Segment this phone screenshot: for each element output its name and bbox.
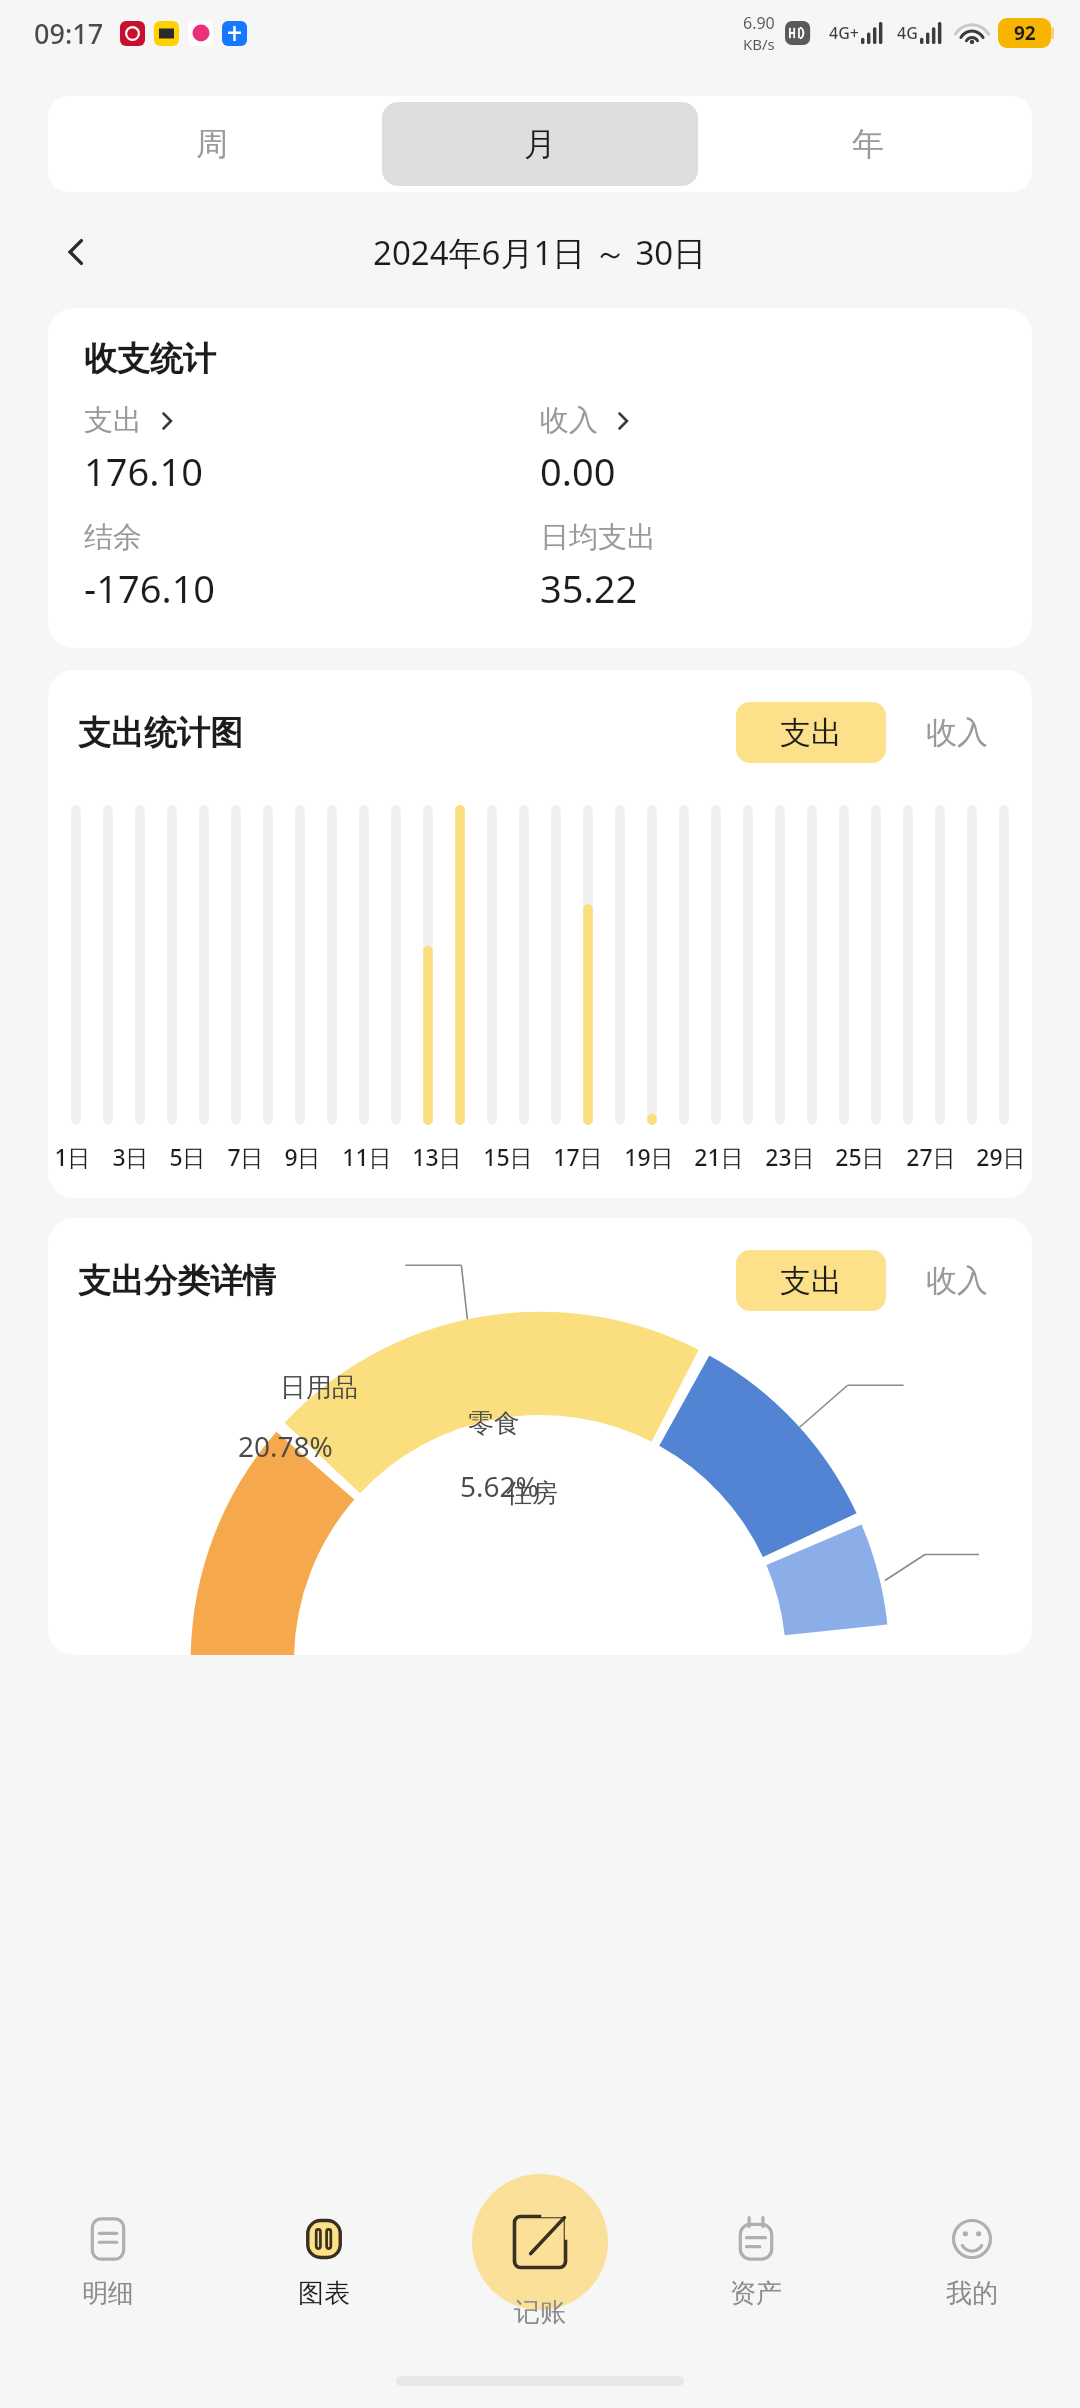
staticText: 收入 — [540, 402, 598, 439]
button[interactable]: 支出 — [84, 402, 178, 439]
staticText: 13日 — [412, 1141, 462, 1172]
staticText: 35.22 — [540, 562, 638, 614]
staticText: 我的 — [946, 2277, 998, 2310]
staticText: 92 — [1014, 20, 1036, 46]
staticText: 1日 — [54, 1141, 91, 1172]
staticText: 年 — [852, 124, 884, 164]
staticText: 支出 — [780, 713, 842, 752]
button[interactable]: 收支统计 — [48, 308, 1032, 648]
staticText: 09:17 — [34, 15, 104, 52]
staticText: 资产 — [730, 2277, 782, 2310]
button[interactable]: 收入 — [922, 1250, 992, 1311]
staticText: 29日 — [976, 1141, 1026, 1172]
staticText: 5日 — [169, 1141, 206, 1172]
button[interactable]: 收入 — [922, 702, 992, 763]
staticText: 5.62% — [460, 1467, 539, 1505]
button[interactable]: 收入 — [540, 402, 634, 439]
staticText: 9日 — [284, 1141, 321, 1172]
staticText: 19日 — [624, 1141, 674, 1172]
staticText: 2024年6月1日 ～ 30日 — [373, 230, 707, 275]
button[interactable]: 支出 — [736, 702, 886, 763]
staticText: 收入 — [926, 713, 988, 752]
button[interactable]: 图表 — [216, 2180, 432, 2340]
staticText: 7日 — [227, 1141, 264, 1172]
staticText: 支出 — [780, 1261, 842, 1300]
staticText: 日用品 — [280, 1371, 358, 1404]
staticText: 0.00 — [540, 445, 616, 497]
staticText: 支出 — [84, 402, 142, 439]
staticText: 收支统计 — [84, 338, 216, 380]
staticText: 20.78% — [238, 1427, 333, 1465]
staticText: 周 — [196, 124, 228, 164]
staticText: 176.10 — [84, 445, 203, 497]
button[interactable]: 月 — [382, 102, 698, 186]
staticText: 记账 — [514, 2296, 566, 2329]
button[interactable]: 上一个月 — [48, 224, 104, 280]
staticText: 15日 — [483, 1141, 533, 1172]
button[interactable]: 资产 — [648, 2180, 864, 2340]
staticText: 支出分类详情 — [78, 1260, 276, 1302]
staticText: 图表 — [298, 2277, 350, 2310]
staticText: -176.10 — [84, 562, 216, 614]
staticText: 日均支出 — [540, 519, 656, 556]
button[interactable]: 记账 — [472, 2174, 608, 2310]
staticText: 27日 — [906, 1141, 956, 1172]
staticText: 支出统计图 — [78, 712, 243, 754]
staticText: 21日 — [694, 1141, 744, 1172]
staticText: 23日 — [765, 1141, 815, 1172]
button[interactable]: 支出 — [736, 1250, 886, 1311]
staticText: 3日 — [112, 1141, 149, 1172]
staticText: 25日 — [835, 1141, 885, 1172]
staticText: 17日 — [553, 1141, 603, 1172]
staticText: 零食 — [468, 1407, 520, 1440]
staticText: 月 — [524, 124, 556, 164]
button[interactable]: 明细 — [0, 2180, 216, 2340]
staticText: 6.90 — [743, 12, 775, 34]
staticText: KB/s — [743, 34, 775, 54]
button[interactable]: 我的 — [864, 2180, 1080, 2340]
staticText: 结余 — [84, 519, 142, 556]
staticText: 4G — [897, 22, 918, 44]
staticText: 住房 — [506, 1477, 558, 1510]
staticText: 4G+ — [829, 22, 859, 44]
button[interactable]: 年 — [710, 102, 1026, 186]
staticText: 收入 — [926, 1261, 988, 1300]
button[interactable]: 周 — [54, 102, 370, 186]
staticText: 明细 — [82, 2277, 134, 2310]
staticText: 11日 — [342, 1141, 392, 1172]
